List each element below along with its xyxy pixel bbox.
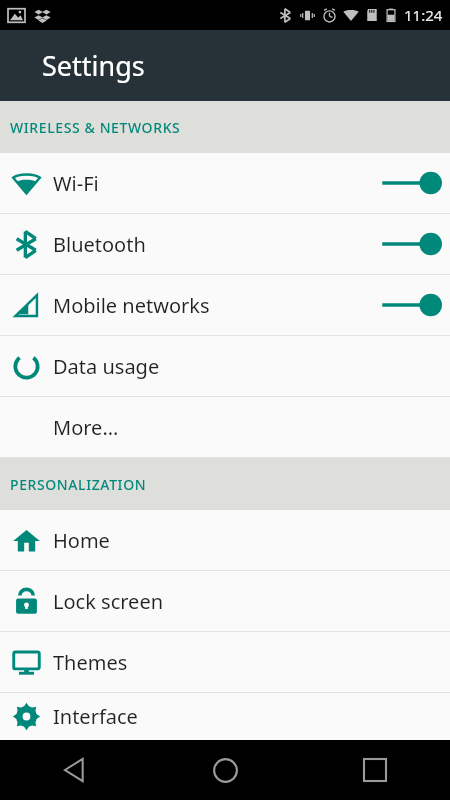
button[interactable]: Data usage: [0, 336, 450, 396]
staticText: Mobile networks: [53, 292, 372, 319]
staticText: PERSONALIZATION: [10, 475, 147, 494]
staticText: WIRELESS & NETWORKS: [10, 118, 181, 137]
button[interactable]: Back: [0, 740, 150, 800]
staticText: 11:24: [404, 5, 443, 25]
button[interactable]: Toggle Bluetooth: [372, 214, 450, 274]
staticText: Wi-Fi: [53, 170, 372, 197]
staticText: Bluetooth: [53, 231, 372, 258]
button[interactable]: Mobile networks: [0, 275, 450, 335]
staticText: More…: [53, 414, 438, 441]
button[interactable]: Home: [0, 510, 450, 570]
button[interactable]: Toggle Mobile networks: [372, 275, 450, 335]
button[interactable]: Bluetooth: [0, 214, 450, 274]
staticText: Lock screen: [53, 588, 438, 615]
staticText: Home: [53, 527, 438, 554]
button[interactable]: Recent apps: [300, 740, 450, 800]
button[interactable]: Wi-Fi: [0, 153, 450, 213]
staticText: Settings: [42, 47, 145, 84]
staticText: Interface: [53, 703, 438, 730]
staticText: Themes: [53, 649, 438, 676]
button[interactable]: More…: [0, 397, 450, 457]
staticText: Data usage: [53, 353, 438, 380]
button[interactable]: Toggle Wi-Fi: [372, 153, 450, 213]
button[interactable]: Home: [150, 740, 300, 800]
button[interactable]: Themes: [0, 632, 450, 692]
button[interactable]: Interface: [0, 693, 450, 740]
button[interactable]: Lock screen: [0, 571, 450, 631]
